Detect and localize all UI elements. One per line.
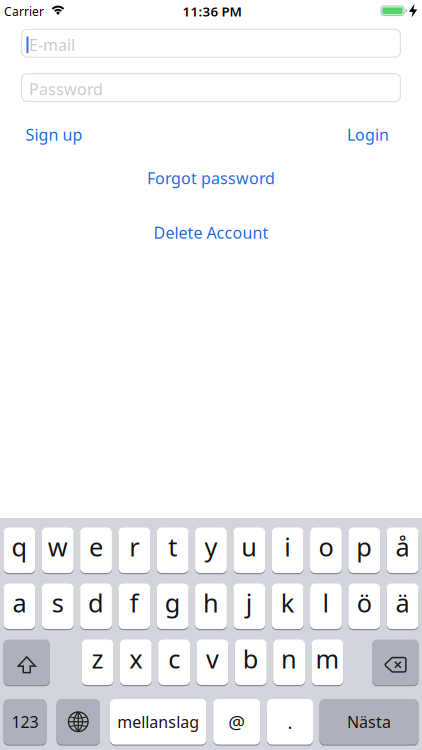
staticText: y (204, 530, 217, 563)
button[interactable]: @ (213, 699, 260, 744)
staticText: v (206, 642, 219, 675)
button[interactable]: b (235, 639, 267, 685)
staticText: l (322, 586, 329, 619)
button[interactable]: 123 (3, 699, 46, 744)
staticText: h (203, 586, 219, 619)
button[interactable]: E-mail (21, 29, 401, 58)
staticText: p (356, 530, 372, 563)
staticText: Password (29, 78, 103, 100)
button[interactable]: h (195, 583, 227, 629)
button[interactable]: mellanslag (110, 699, 206, 744)
button[interactable]: v (197, 639, 228, 685)
button[interactable]: q (3, 527, 35, 573)
staticText: Delete Account (153, 222, 268, 243)
staticText: Carrier (4, 3, 44, 19)
button[interactable]: c (158, 639, 190, 685)
staticText: w (48, 530, 68, 563)
staticText: @ (228, 709, 245, 734)
button[interactable]: e (80, 527, 112, 573)
staticText: g (165, 586, 181, 619)
staticText: . (287, 709, 292, 734)
staticText: ä (396, 586, 410, 619)
button[interactable]: ö (348, 583, 380, 629)
button[interactable]: Nästa (319, 699, 418, 744)
staticText: å (396, 530, 410, 563)
button[interactable]: Forgot password (147, 167, 275, 189)
button[interactable]: n (273, 639, 305, 685)
staticText: mellanslag (117, 711, 199, 732)
staticText: n (281, 642, 297, 675)
button[interactable]: y (195, 527, 227, 573)
button[interactable]: l (310, 583, 342, 629)
staticText: a (12, 586, 26, 619)
button[interactable]: d (80, 583, 112, 629)
staticText: t (168, 530, 177, 563)
staticText: Sign up (25, 124, 82, 145)
button[interactable]: j (233, 583, 265, 629)
staticText: 123 (11, 711, 38, 732)
button[interactable]: u (233, 527, 265, 573)
button[interactable]: Password (21, 73, 401, 102)
staticText: d (88, 586, 104, 619)
staticText: r (129, 530, 139, 563)
staticText: E-mail (29, 34, 75, 55)
button[interactable]: Delete Account (153, 222, 268, 243)
button[interactable]: a (3, 583, 35, 629)
button[interactable]: Sign up (25, 124, 82, 145)
button[interactable]: m (311, 639, 343, 685)
staticText: ö (357, 586, 372, 619)
staticText: u (241, 530, 257, 563)
staticText: m (315, 642, 339, 675)
staticText: Nästa (347, 711, 391, 732)
staticText: i (284, 530, 291, 563)
button[interactable]: ä (387, 583, 418, 629)
staticText: k (281, 586, 295, 619)
staticText: z (91, 642, 103, 675)
button[interactable]: Next keyboard (56, 699, 100, 744)
staticText: s (52, 586, 64, 619)
button[interactable]: z (82, 639, 113, 685)
button[interactable]: s (42, 583, 74, 629)
staticText: 11:36 PM (182, 2, 241, 20)
staticText: c (168, 642, 180, 675)
button[interactable]: Delete (372, 639, 418, 685)
button[interactable]: p (348, 527, 380, 573)
button[interactable]: r (118, 527, 150, 573)
button[interactable]: f (118, 583, 150, 629)
button[interactable]: w (42, 527, 74, 573)
staticText: x (129, 642, 142, 675)
staticText: j (246, 586, 253, 619)
button[interactable]: Login (347, 124, 389, 145)
staticText: o (318, 530, 333, 563)
staticText: e (89, 530, 103, 563)
staticText: Login (347, 124, 389, 145)
button[interactable]: . (267, 699, 313, 744)
staticText: Forgot password (147, 167, 275, 189)
button[interactable]: x (120, 639, 152, 685)
button[interactable]: i (272, 527, 303, 573)
button[interactable]: o (310, 527, 342, 573)
staticText: q (11, 530, 27, 563)
button[interactable]: t (157, 527, 189, 573)
button[interactable]: Shift (3, 639, 50, 685)
button[interactable]: å (387, 527, 418, 573)
staticText: b (243, 642, 259, 675)
staticText: f (130, 586, 139, 619)
button[interactable]: k (272, 583, 303, 629)
button[interactable]: g (157, 583, 189, 629)
